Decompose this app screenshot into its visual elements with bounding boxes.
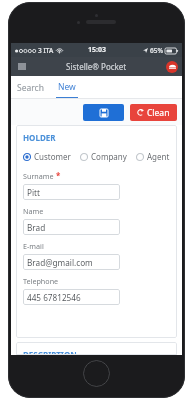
staticText: Name [23,206,44,216]
staticText: Search [17,82,44,94]
button[interactable]: Menu [16,61,27,72]
button[interactable]: Clean [137,104,170,121]
staticText: Sistelle® Pocket [66,61,127,72]
staticText: Brad@gmail.com [27,257,93,268]
staticText: New [58,81,76,93]
staticText: E-mail [23,241,44,251]
staticText: Clean [147,107,170,119]
staticText: Agent [147,151,170,162]
button[interactable]: Agent [136,151,170,162]
staticText: 15:03 [88,45,106,55]
staticText: HOLDER [23,132,56,143]
staticText: DESCRIPTION [23,349,77,355]
button[interactable]: Company [80,151,127,162]
staticText: * [56,170,61,181]
staticText: Telephone [23,276,59,286]
button[interactable]: Brad@gmail.com [23,254,120,270]
button[interactable]: Brad [23,219,120,235]
staticText: 65% [150,46,163,55]
button[interactable]: 445 67812546 [23,289,120,305]
button[interactable]: Home [83,360,110,387]
button[interactable]: Profile [166,61,178,73]
staticText: 3 ITA [38,46,54,55]
staticText: 445 67812546 [27,292,81,303]
button[interactable]: New [56,76,78,99]
button[interactable]: Save [83,104,124,121]
button[interactable]: Customer [23,151,71,162]
staticText: Pitt [27,187,40,198]
staticText: Brad [27,222,46,233]
staticText: Surname [23,171,54,181]
button[interactable]: Pitt [23,184,120,200]
button[interactable]: Search [17,76,44,99]
staticText: Company [91,151,127,162]
staticText: Customer [34,151,71,162]
